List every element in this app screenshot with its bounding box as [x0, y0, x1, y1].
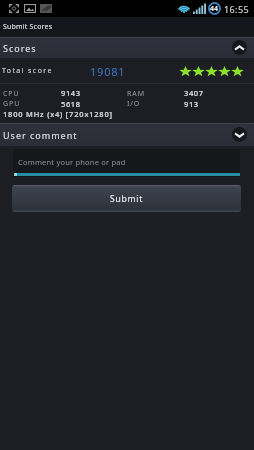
button[interactable]: Scores [0, 37, 254, 58]
staticText: Scores [3, 42, 37, 54]
staticText: GPU [3, 99, 21, 109]
staticText: Comment your phone or pad [18, 157, 126, 167]
staticText: 16:55 [224, 3, 250, 15]
staticText: 913 [184, 99, 199, 109]
staticText: 44 [210, 4, 219, 14]
button[interactable]: User comment [0, 123, 254, 146]
staticText: I/O [127, 99, 141, 109]
other: Collapse [232, 40, 247, 55]
staticText: 1800 MHz (x4) [720x1280] [3, 109, 113, 119]
staticText: 5618 [61, 99, 81, 109]
staticText: User comment [3, 129, 78, 141]
staticText: CPU [3, 89, 20, 99]
staticText: 3407 [184, 88, 204, 98]
staticText: 19081 [90, 64, 126, 79]
staticText: 9143 [61, 88, 81, 98]
staticText: Total score [2, 66, 53, 76]
staticText: Submit [110, 193, 144, 205]
button[interactable]: Submit [12, 185, 241, 212]
staticText: Submit Scores [3, 22, 53, 32]
button[interactable]: Comment your phone or pad [13, 149, 240, 177]
other: Expand [232, 127, 247, 142]
staticText: RAM [127, 89, 145, 99]
